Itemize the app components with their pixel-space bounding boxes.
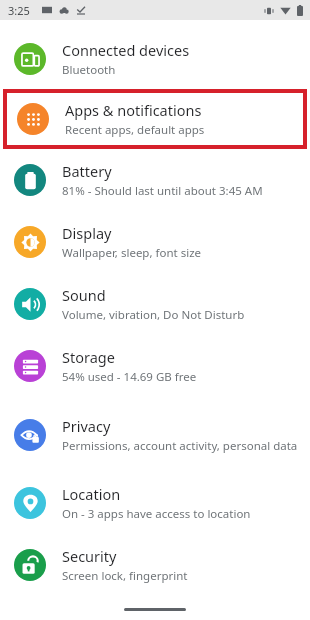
- staticText: Connected devices: [62, 40, 190, 60]
- staticText: Recent apps, default apps: [65, 122, 205, 138]
- button[interactable]: Storage: [0, 335, 310, 397]
- staticText: 3:25: [8, 3, 30, 18]
- staticText: Bluetooth: [62, 62, 116, 78]
- staticText: Storage: [62, 347, 115, 367]
- staticText: Permissions, account activity, personal …: [62, 438, 298, 454]
- staticText: Wallpaper, sleep, font size: [62, 245, 202, 261]
- button[interactable]: Sound: [0, 273, 310, 335]
- staticText: 81% - Should last until about 3:45 AM: [62, 183, 263, 199]
- staticText: Location: [62, 484, 121, 504]
- staticText: Battery: [62, 161, 112, 181]
- button[interactable]: Battery: [0, 149, 310, 211]
- button[interactable]: Display: [0, 211, 310, 273]
- staticText: Apps & notifications: [65, 100, 202, 120]
- staticText: On - 3 apps have access to location: [62, 506, 251, 522]
- staticText: Display: [62, 223, 112, 243]
- button[interactable]: Security: [0, 534, 310, 596]
- button[interactable]: Location: [0, 472, 310, 534]
- button[interactable]: Privacy: [0, 397, 310, 472]
- button[interactable]: Connected devices: [0, 29, 310, 89]
- staticText: 54% used - 14.69 GB free: [62, 369, 197, 385]
- staticText: Volume, vibration, Do Not Disturb: [62, 307, 245, 323]
- staticText: Screen lock, fingerprint: [62, 568, 188, 584]
- button[interactable]: Apps & notifications: [3, 89, 307, 149]
- staticText: Sound: [62, 285, 106, 305]
- staticText: Security: [62, 546, 117, 566]
- staticText: Privacy: [62, 416, 111, 436]
